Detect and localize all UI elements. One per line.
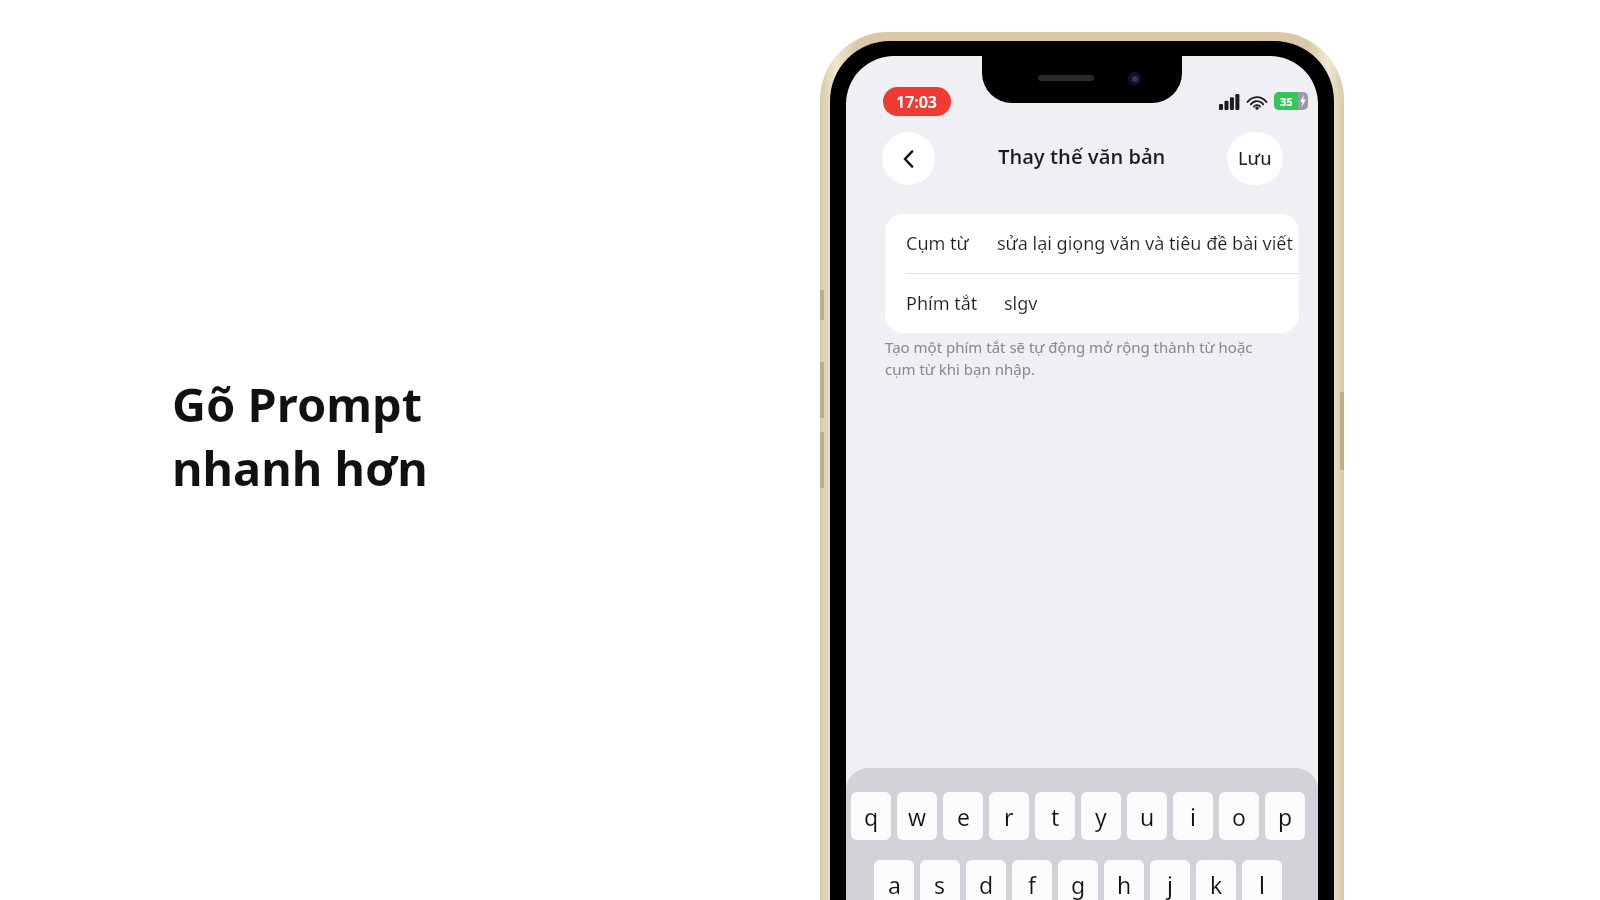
staticText: 35: [1280, 94, 1293, 109]
button[interactable]: s: [920, 860, 960, 900]
staticText: q: [864, 801, 879, 832]
button[interactable]: Back: [882, 132, 935, 185]
staticText: d: [979, 869, 994, 900]
button[interactable]: f: [1012, 860, 1052, 900]
staticText: Lưu: [1238, 146, 1272, 171]
staticText: i: [1190, 801, 1196, 832]
staticText: e: [957, 801, 970, 832]
button[interactable]: l: [1242, 860, 1282, 900]
button[interactable]: r: [989, 792, 1029, 840]
button[interactable]: k: [1196, 860, 1236, 900]
staticText: w: [908, 801, 927, 832]
staticText: p: [1278, 801, 1293, 832]
button[interactable]: g: [1058, 860, 1098, 900]
button[interactable]: a: [874, 860, 914, 900]
staticText: j: [1167, 869, 1173, 900]
button[interactable]: w: [897, 792, 937, 840]
button[interactable]: u: [1127, 792, 1167, 840]
staticText: t: [1051, 801, 1060, 832]
button[interactable]: Lưu: [1227, 132, 1283, 185]
staticText: y: [1095, 801, 1107, 832]
staticText: l: [1259, 869, 1265, 900]
staticText: Gõ Prompt: [172, 372, 423, 436]
staticText: nhanh hơn: [172, 436, 428, 500]
staticText: g: [1071, 869, 1086, 900]
button[interactable]: Cụm từ: [885, 214, 1299, 273]
button[interactable]: h: [1104, 860, 1144, 900]
button[interactable]: p: [1265, 792, 1305, 840]
staticText: a: [888, 869, 901, 900]
staticText: s: [934, 869, 946, 900]
staticText: slgv: [1004, 291, 1038, 316]
button[interactable]: q: [851, 792, 891, 840]
staticText: Phím tắt: [906, 291, 978, 316]
staticText: sửa lại giọng văn và tiêu đề bài viết tr…: [997, 231, 1299, 256]
staticText: Thay thế văn bản: [998, 143, 1166, 170]
staticText: r: [1004, 801, 1014, 832]
button[interactable]: Phím tắt: [885, 274, 1299, 333]
staticText: u: [1140, 801, 1155, 832]
staticText: k: [1210, 869, 1223, 900]
staticText: 17:03: [896, 91, 938, 113]
staticText: Cụm từ: [906, 231, 969, 256]
button[interactable]: e: [943, 792, 983, 840]
staticText: o: [1232, 801, 1246, 832]
button[interactable]: d: [966, 860, 1006, 900]
staticText: Tạo một phím tắt sẽ tự động mở rộng thàn…: [885, 337, 1285, 380]
button[interactable]: o: [1219, 792, 1259, 840]
button[interactable]: t: [1035, 792, 1075, 840]
staticText: h: [1117, 869, 1132, 900]
button[interactable]: i: [1173, 792, 1213, 840]
button[interactable]: y: [1081, 792, 1121, 840]
button[interactable]: j: [1150, 860, 1190, 900]
staticText: f: [1028, 869, 1036, 900]
